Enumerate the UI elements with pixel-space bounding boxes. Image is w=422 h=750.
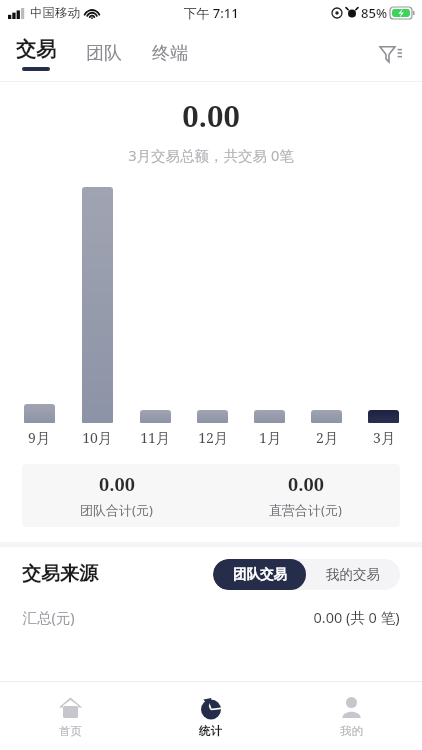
staticText: 交易来源 <box>22 562 98 586</box>
button[interactable]: 首页 <box>0 682 140 750</box>
staticText: 12月 <box>198 428 228 447</box>
staticText: 1月 <box>259 428 281 447</box>
button[interactable]: 0.00 <box>22 464 400 527</box>
button[interactable]: 团队交易 <box>213 559 306 590</box>
staticText: 0.00 <box>99 472 135 497</box>
button[interactable]: 统计 <box>140 682 281 750</box>
staticText: 统计 <box>199 724 222 738</box>
staticText: 0.00 (共 0 笔) <box>313 607 400 627</box>
staticText: 0.00 <box>288 472 324 497</box>
button[interactable]: 我的 <box>281 682 422 750</box>
staticText: 终端 <box>152 42 188 65</box>
staticText: 2月 <box>316 428 338 447</box>
button[interactable]: Filter <box>374 37 408 71</box>
staticText: 我的交易 <box>326 566 380 583</box>
staticText: 85% <box>361 4 387 22</box>
button[interactable]: 终端 <box>150 36 190 71</box>
staticText: 我的 <box>340 724 363 738</box>
button[interactable]: 我的交易 <box>306 559 400 590</box>
staticText: 直营合计(元) <box>269 501 342 519</box>
staticText: 交易 <box>16 37 56 62</box>
button[interactable]: 交易 <box>14 37 58 71</box>
staticText: 团队合计(元) <box>80 501 153 519</box>
button[interactable]: 团队 <box>84 36 124 71</box>
staticText: 11月 <box>140 428 170 447</box>
staticText: 首页 <box>59 724 82 738</box>
staticText: 团队 <box>86 42 122 65</box>
staticText: 0.00 <box>182 96 240 135</box>
staticText: 3月 <box>373 428 395 447</box>
staticText: 下午 7:11 <box>183 4 239 22</box>
staticText: 10月 <box>82 428 112 447</box>
staticText: 中国移动 <box>30 5 80 21</box>
staticText: 9月 <box>28 428 50 447</box>
staticText: 团队交易 <box>233 566 287 583</box>
staticText: 汇总(元) <box>22 607 75 627</box>
staticText: 3月交易总额，共交易 0笔 <box>128 145 294 165</box>
